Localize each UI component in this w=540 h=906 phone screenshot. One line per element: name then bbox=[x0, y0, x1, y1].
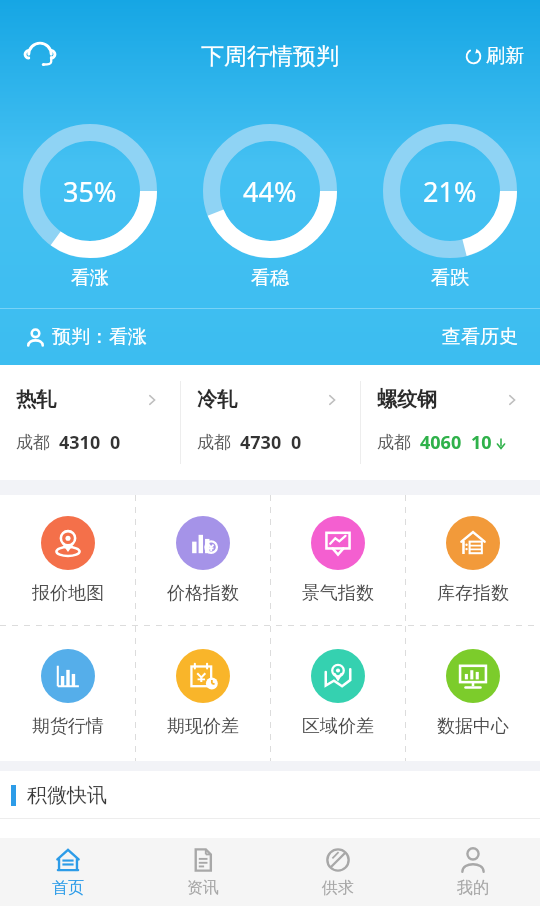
staticText: 看跌 bbox=[431, 266, 469, 290]
staticText: 0 bbox=[291, 430, 302, 455]
staticText: 看涨 bbox=[71, 266, 109, 290]
staticText: 4060 bbox=[420, 430, 462, 455]
button[interactable]: 区域价差 bbox=[271, 626, 405, 761]
staticText: 区域价差 bbox=[302, 715, 374, 738]
button[interactable]: 景气指数 bbox=[271, 495, 405, 625]
staticText: 4730 bbox=[240, 430, 282, 455]
staticText: 首页 bbox=[52, 878, 84, 898]
staticText: 4310 bbox=[59, 430, 101, 455]
staticText: 螺纹钢 bbox=[377, 387, 437, 412]
button[interactable]: 首页 bbox=[0, 838, 135, 906]
button[interactable]: 期货行情 bbox=[0, 626, 135, 761]
staticText: 44% bbox=[243, 173, 297, 210]
staticText: 10 bbox=[471, 430, 492, 455]
button[interactable]: 数据中心 bbox=[406, 626, 540, 761]
staticText: 数据中心 bbox=[437, 715, 509, 738]
staticText: 成都 bbox=[377, 432, 411, 453]
staticText: 刷新 bbox=[486, 44, 524, 68]
button[interactable]: 期现价差 bbox=[136, 626, 270, 761]
staticText: 21% bbox=[423, 173, 477, 210]
staticText: 景气指数 bbox=[302, 582, 374, 605]
staticText: 冷轧 bbox=[197, 387, 237, 412]
staticText: 期货行情 bbox=[32, 715, 104, 738]
button[interactable]: 预判：看涨 bbox=[26, 325, 147, 349]
staticText: 成都 bbox=[197, 432, 231, 453]
button[interactable]: 刷新 bbox=[460, 38, 528, 74]
staticText: 看稳 bbox=[251, 266, 289, 290]
button[interactable]: 螺纹钢 bbox=[361, 365, 540, 480]
button[interactable]: 冷轧 bbox=[181, 365, 360, 480]
staticText: 期现价差 bbox=[167, 715, 239, 738]
staticText: 价格指数 bbox=[167, 582, 239, 605]
staticText: 预判：看涨 bbox=[52, 325, 147, 349]
button[interactable]: Customer service bbox=[14, 30, 66, 82]
button[interactable]: 报价地图 bbox=[0, 495, 135, 625]
button[interactable]: 查看历史 bbox=[442, 325, 518, 349]
staticText: 热轧 bbox=[16, 387, 56, 412]
staticText: 库存指数 bbox=[437, 582, 509, 605]
staticText: 供求 bbox=[322, 878, 354, 898]
button[interactable]: 我的 bbox=[405, 838, 540, 906]
staticText: 报价地图 bbox=[32, 582, 104, 605]
button[interactable]: 价格指数 bbox=[136, 495, 270, 625]
staticText: 资讯 bbox=[187, 878, 219, 898]
staticText: 积微快讯 bbox=[27, 783, 107, 808]
button[interactable]: 供求 bbox=[270, 838, 405, 906]
staticText: 我的 bbox=[457, 878, 489, 898]
staticText: 0 bbox=[110, 430, 121, 455]
button[interactable]: 库存指数 bbox=[406, 495, 540, 625]
button[interactable]: 热轧 bbox=[0, 365, 180, 480]
button[interactable]: 资讯 bbox=[135, 838, 270, 906]
staticText: 成都 bbox=[16, 432, 50, 453]
staticText: 35% bbox=[63, 173, 117, 210]
staticText: 下周行情预判 bbox=[201, 42, 339, 71]
